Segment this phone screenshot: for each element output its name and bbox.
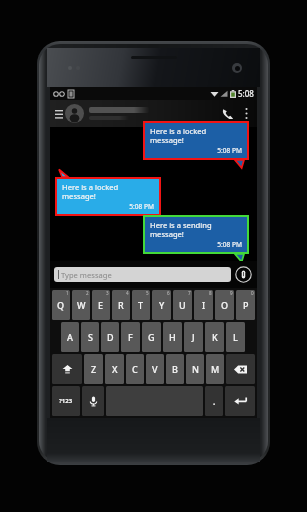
- button[interactable]: F: [121, 322, 140, 352]
- button[interactable]: Here is a locked message!: [55, 169, 165, 216]
- staticText: 5:08: [238, 88, 254, 99]
- button[interactable]: O: [215, 290, 234, 320]
- button[interactable]: B: [166, 354, 184, 384]
- button[interactable]: Add attachment: [234, 265, 253, 284]
- staticText: R: [118, 299, 124, 311]
- button[interactable]: Y: [152, 290, 171, 320]
- staticText: Here is a sending message!: [150, 220, 242, 240]
- staticText: 9: [230, 290, 233, 296]
- button[interactable]: Here is a sending message!: [143, 215, 253, 262]
- button[interactable]: H: [163, 322, 182, 352]
- button[interactable]: Voice input: [82, 386, 104, 416]
- staticText: D: [107, 331, 114, 343]
- staticText: J: [192, 331, 195, 343]
- staticText: 6: [167, 290, 170, 296]
- staticText: B: [172, 363, 178, 375]
- staticText: Z: [91, 363, 97, 375]
- staticText: N: [192, 363, 199, 375]
- button[interactable]: W: [72, 290, 90, 320]
- staticText: 0: [251, 290, 254, 296]
- staticText: K: [212, 331, 218, 343]
- staticText: Type message: [61, 270, 112, 280]
- button[interactable]: N: [186, 354, 204, 384]
- button[interactable]: More options: [239, 106, 254, 121]
- button[interactable]: X: [105, 354, 124, 384]
- button[interactable]: S: [81, 322, 99, 352]
- staticText: Here is a locked message!: [150, 126, 242, 146]
- button[interactable]: Q: [52, 290, 70, 320]
- button[interactable]: A: [61, 322, 79, 352]
- button[interactable]: Enter: [225, 386, 255, 416]
- staticText: V: [152, 363, 158, 375]
- button[interactable]: U: [173, 290, 192, 320]
- staticText: S: [88, 331, 93, 343]
- staticText: 3: [106, 290, 109, 296]
- staticText: W: [77, 299, 86, 311]
- button[interactable]: Z: [84, 354, 103, 384]
- button[interactable]: D: [101, 322, 119, 352]
- button[interactable]: P: [236, 290, 255, 320]
- staticText: I: [202, 299, 206, 311]
- button[interactable]: Here is a locked message!: [143, 121, 253, 168]
- staticText: 5:08 PM: [62, 202, 154, 211]
- staticText: G: [148, 331, 155, 343]
- button[interactable]: Shift: [52, 354, 82, 384]
- button[interactable]: Open navigation drawer: [52, 103, 65, 125]
- staticText: 8: [209, 290, 212, 296]
- staticText: 5: [146, 290, 149, 296]
- staticText: U: [179, 299, 186, 311]
- staticText: P: [243, 299, 249, 311]
- staticText: 5:08 PM: [150, 146, 242, 155]
- staticText: X: [112, 363, 118, 375]
- staticText: A: [67, 331, 73, 343]
- staticText: 4: [126, 290, 129, 296]
- staticText: E: [98, 299, 104, 311]
- button[interactable]: K: [205, 322, 224, 352]
- staticText: ?123: [59, 397, 73, 405]
- staticText: .: [213, 396, 216, 407]
- staticText: Here is a locked message!: [62, 182, 154, 202]
- button[interactable]: J: [184, 322, 203, 352]
- button[interactable]: Delete: [226, 354, 255, 384]
- staticText: T: [138, 299, 144, 311]
- staticText: 7: [188, 290, 191, 296]
- staticText: F: [128, 331, 133, 343]
- staticText: O: [221, 299, 229, 311]
- button[interactable]: I: [194, 290, 213, 320]
- staticText: 2: [86, 290, 89, 296]
- button[interactable]: V: [146, 354, 164, 384]
- button[interactable]: ?123: [52, 386, 80, 416]
- button[interactable]: T: [132, 290, 150, 320]
- staticText: Q: [57, 299, 65, 311]
- button[interactable]: L: [226, 322, 245, 352]
- staticText: Y: [159, 299, 165, 311]
- button[interactable]: E: [92, 290, 110, 320]
- button[interactable]: Call: [217, 103, 239, 125]
- staticText: L: [233, 331, 238, 343]
- button[interactable]: C: [126, 354, 144, 384]
- button[interactable]: G: [142, 322, 161, 352]
- staticText: 5:08 PM: [150, 240, 242, 249]
- button[interactable]: .: [205, 386, 223, 416]
- staticText: 1: [66, 290, 69, 296]
- button[interactable]: Type message: [54, 267, 231, 282]
- button[interactable]: R: [112, 290, 130, 320]
- staticText: H: [169, 331, 176, 343]
- button[interactable]: M: [206, 354, 224, 384]
- staticText: M: [211, 363, 220, 375]
- staticText: C: [132, 363, 138, 375]
